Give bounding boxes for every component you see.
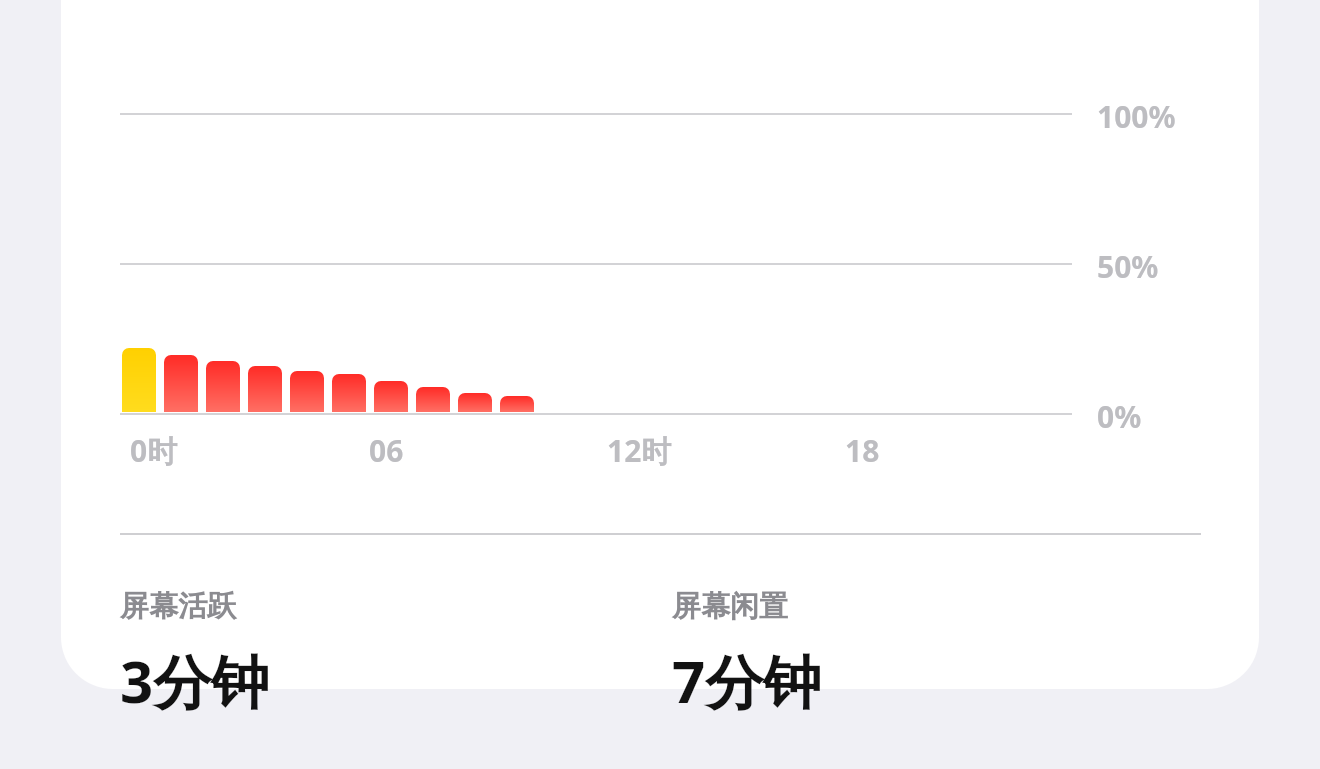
staticText: 屏幕活跃 bbox=[120, 588, 236, 625]
staticText: 0时 bbox=[130, 430, 178, 471]
button[interactable]: 屏幕活跃 bbox=[120, 588, 520, 720]
staticText: 12时 bbox=[607, 430, 672, 471]
staticText: 0% bbox=[1097, 396, 1142, 437]
staticText: 18 bbox=[845, 430, 880, 471]
staticText: 100% bbox=[1097, 96, 1176, 137]
staticText: 7分钟 bbox=[672, 641, 822, 720]
button[interactable]: 屏幕闲置 bbox=[672, 588, 1072, 720]
staticText: 屏幕闲置 bbox=[672, 588, 788, 625]
staticText: 06 bbox=[369, 430, 404, 471]
staticText: 50% bbox=[1097, 246, 1159, 287]
staticText: 3分钟 bbox=[120, 641, 270, 720]
